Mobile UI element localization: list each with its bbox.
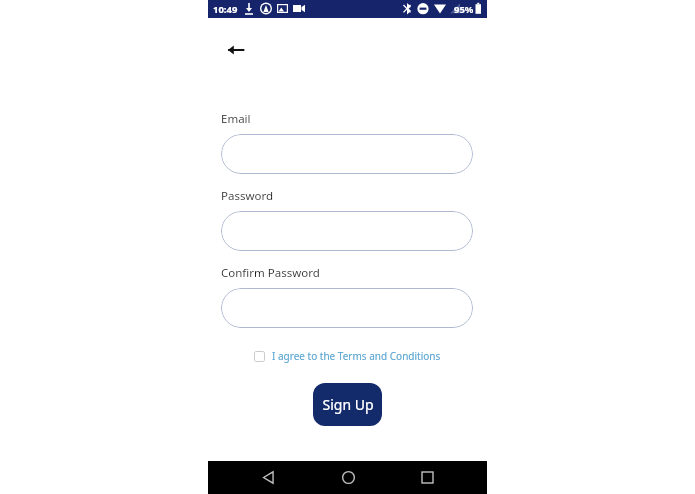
button[interactable] xyxy=(221,288,473,328)
staticText: Email xyxy=(221,111,251,127)
staticText: Confirm Password xyxy=(221,265,320,281)
button[interactable] xyxy=(221,211,473,251)
button[interactable]: Sign Up xyxy=(313,383,382,426)
button[interactable]: Recents xyxy=(407,461,447,494)
button[interactable]: Back xyxy=(218,32,254,68)
button[interactable]: Home xyxy=(328,461,368,494)
staticText: I agree to the Terms and Conditions xyxy=(272,349,441,363)
button[interactable] xyxy=(221,134,473,174)
staticText: Password xyxy=(221,188,274,204)
button[interactable]: Back xyxy=(248,461,288,494)
staticText: 10:49 xyxy=(213,3,238,16)
staticText: 95% xyxy=(454,3,474,16)
button[interactable]: I agree to the Terms and Conditions xyxy=(221,349,473,363)
staticText: Sign Up xyxy=(322,395,374,414)
